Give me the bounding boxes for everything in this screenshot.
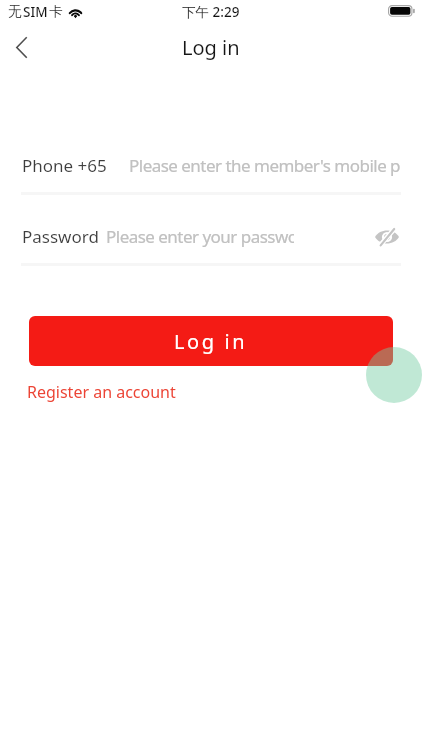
staticText: 无 [8,3,22,20]
button[interactable] [21,216,401,254]
staticText: Log in [174,328,248,355]
button[interactable] [21,145,401,183]
staticText: Phone +65 [22,154,107,177]
staticText: Register an account [27,381,176,403]
staticText: Please enter the member's mobile phone n… [129,154,400,177]
staticText: Password [22,225,99,248]
staticText: 下午 2:29 [182,3,240,21]
staticText: Log in [182,34,240,61]
staticText: SIM [23,3,48,21]
button[interactable]: Show password [374,224,400,250]
button[interactable]: Log in [29,316,393,366]
button[interactable]: Back [0,26,42,68]
staticText: 卡 [49,3,63,20]
button[interactable]: Register an account [27,381,176,403]
button[interactable]: Customer service [366,347,422,403]
staticText: Please enter your password, 6-20 charact… [106,225,294,248]
